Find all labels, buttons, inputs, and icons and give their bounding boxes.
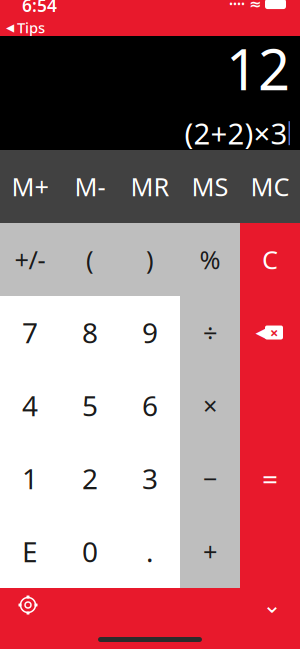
button[interactable]: MC	[240, 150, 300, 223]
staticText: E	[22, 533, 38, 570]
button[interactable]: .	[120, 515, 180, 588]
staticText: ◀	[255, 324, 266, 341]
staticText: 6:54	[22, 0, 57, 17]
button[interactable]: MS	[180, 150, 240, 223]
staticText: 9	[142, 314, 158, 351]
staticText: )	[146, 243, 154, 276]
staticText: MR	[130, 170, 169, 203]
staticText: 7	[22, 314, 38, 351]
staticText: (2+2)×3	[184, 114, 287, 153]
button[interactable]: Settings	[6, 589, 50, 621]
button[interactable]: ×	[180, 369, 240, 442]
button[interactable]: 7	[0, 296, 60, 369]
staticText: ≈	[249, 0, 261, 12]
staticText: %	[199, 243, 220, 276]
staticText: Tips	[17, 18, 45, 37]
button[interactable]: (	[60, 223, 120, 296]
staticText: 1	[22, 460, 38, 497]
staticText: =	[262, 460, 278, 497]
staticText: 2	[82, 460, 98, 497]
button[interactable]: −	[180, 442, 240, 515]
staticText: ••••	[229, 0, 245, 11]
button[interactable]: %	[180, 223, 240, 296]
staticText: −	[203, 462, 217, 495]
button[interactable]: MR	[120, 150, 180, 223]
button[interactable]: 1	[0, 442, 60, 515]
button[interactable]: E	[0, 515, 60, 588]
staticText: (	[86, 243, 94, 276]
button[interactable]: ◀	[0, 17, 45, 38]
staticText: 5	[82, 387, 98, 424]
button[interactable]: =	[240, 369, 300, 588]
button[interactable]: +	[180, 515, 240, 588]
button[interactable]: 8	[60, 296, 120, 369]
button[interactable]: 0	[60, 515, 120, 588]
button[interactable]: 4	[0, 369, 60, 442]
button[interactable]: M-	[60, 150, 120, 223]
button[interactable]: C	[240, 223, 300, 296]
button[interactable]: 5	[60, 369, 120, 442]
staticText: M+	[11, 170, 48, 203]
staticText: .	[146, 533, 154, 570]
button[interactable]: Backspace	[240, 296, 300, 369]
button[interactable]: 2	[60, 442, 120, 515]
staticText: ×	[203, 389, 217, 422]
button[interactable]: 3	[120, 442, 180, 515]
button[interactable]: 6	[120, 369, 180, 442]
button[interactable]: ÷	[180, 296, 240, 369]
staticText: +/-	[14, 243, 45, 276]
staticText: ⌄	[262, 592, 281, 618]
button[interactable]: Hide keyboard	[250, 589, 294, 621]
staticText: 4	[22, 387, 38, 424]
button[interactable]: 9	[120, 296, 180, 369]
staticText: MS	[191, 170, 228, 203]
staticText: 3	[142, 460, 158, 497]
button[interactable]: )	[120, 223, 180, 296]
button[interactable]: M+	[0, 150, 60, 223]
staticText: ÷	[203, 316, 217, 349]
staticText: 6	[142, 387, 158, 424]
staticText: MC	[250, 170, 289, 203]
staticText: M-	[74, 170, 105, 203]
staticText: C	[262, 243, 278, 276]
staticText: ×	[270, 323, 278, 342]
staticText: 8	[82, 314, 98, 351]
button[interactable]: +/-	[0, 223, 60, 296]
staticText: 12	[226, 31, 290, 106]
staticText: ◀	[6, 21, 14, 34]
staticText: +	[203, 535, 217, 568]
staticText: 0	[82, 533, 98, 570]
